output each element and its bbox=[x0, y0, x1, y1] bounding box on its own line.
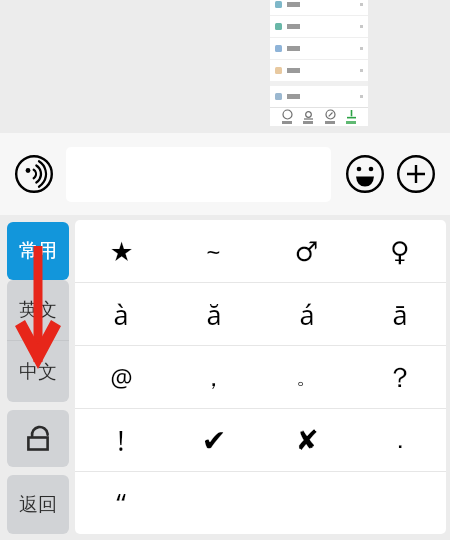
staticText: ✔ bbox=[201, 423, 227, 458]
staticText: 返回 bbox=[19, 493, 57, 517]
button[interactable]: ★ bbox=[75, 220, 167, 282]
staticText: ， bbox=[201, 362, 226, 393]
button[interactable]: ♂ bbox=[260, 220, 353, 282]
button[interactable]: ✔ bbox=[167, 409, 260, 471]
staticText: á bbox=[299, 296, 315, 333]
staticText: 英文 bbox=[19, 298, 57, 322]
staticText: ă bbox=[206, 296, 222, 333]
staticText: ． bbox=[388, 425, 412, 455]
staticText: ! bbox=[117, 422, 125, 459]
staticText: ？ bbox=[386, 360, 414, 395]
staticText: ~ bbox=[206, 234, 221, 268]
button[interactable]: ~ bbox=[167, 220, 260, 282]
staticText: 中文 bbox=[19, 360, 57, 384]
staticText: à bbox=[113, 296, 129, 333]
button[interactable]: 中文 bbox=[7, 341, 69, 402]
button[interactable]: ! bbox=[75, 409, 167, 471]
button[interactable]: Lock bbox=[7, 410, 69, 467]
staticText: ✘ bbox=[295, 424, 319, 457]
staticText: 常用 bbox=[19, 239, 57, 263]
button[interactable]: ． bbox=[353, 409, 446, 471]
button[interactable]: 。 bbox=[260, 346, 353, 408]
button[interactable]: à bbox=[75, 283, 167, 345]
button[interactable]: á bbox=[260, 283, 353, 345]
button[interactable]: More bbox=[396, 154, 436, 194]
button[interactable]: ？ bbox=[353, 346, 446, 408]
button[interactable]: Emoji bbox=[345, 154, 385, 194]
button[interactable]: Voice input bbox=[14, 154, 54, 194]
staticText: ★ bbox=[109, 236, 134, 267]
button[interactable]: 返回 bbox=[7, 475, 69, 534]
button[interactable]: ă bbox=[167, 283, 260, 345]
button[interactable]: @ bbox=[75, 346, 167, 408]
staticText: ā bbox=[392, 296, 408, 333]
staticText: @ bbox=[110, 360, 133, 394]
button[interactable]: ， bbox=[167, 346, 260, 408]
button[interactable]: ✘ bbox=[260, 409, 353, 471]
button[interactable]: “ bbox=[75, 472, 167, 534]
staticText: ♀ bbox=[390, 236, 410, 267]
button[interactable]: 英文 bbox=[7, 280, 69, 340]
button[interactable]: ā bbox=[353, 283, 446, 345]
button[interactable]: 常用 bbox=[7, 222, 69, 280]
button[interactable]: ♀ bbox=[353, 220, 446, 282]
staticText: 。 bbox=[296, 363, 318, 391]
staticText: “ bbox=[116, 485, 126, 522]
staticText: ♂ bbox=[294, 236, 319, 267]
